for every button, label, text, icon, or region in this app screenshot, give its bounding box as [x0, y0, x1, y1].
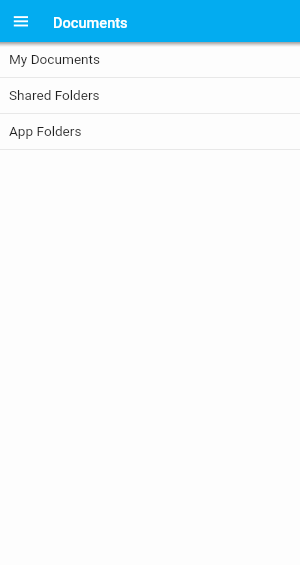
button[interactable]: Open navigation menu: [6, 5, 36, 36]
staticText: My Documents: [9, 51, 101, 67]
staticText: Shared Folders: [9, 87, 100, 103]
button[interactable]: My Documents: [0, 42, 300, 78]
staticText: App Folders: [9, 123, 82, 139]
button[interactable]: App Folders: [0, 114, 300, 150]
staticText: Documents: [53, 14, 128, 31]
button[interactable]: Shared Folders: [0, 78, 300, 114]
